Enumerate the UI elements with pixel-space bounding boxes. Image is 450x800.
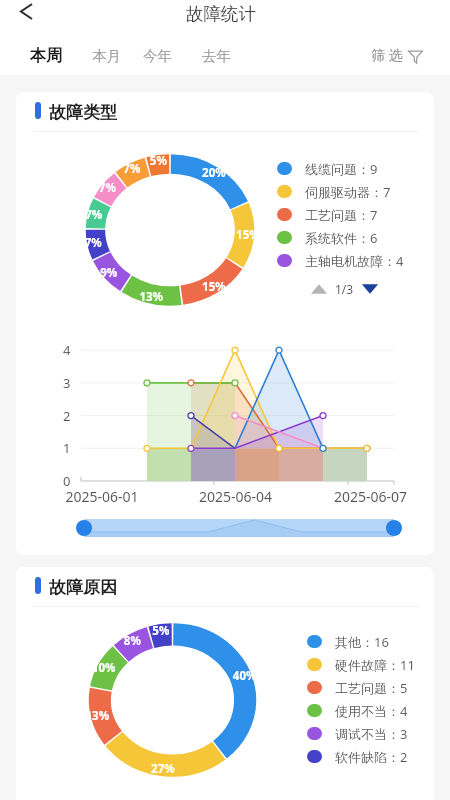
staticText: 筛选 xyxy=(370,47,404,65)
button[interactable]: 调试不当：3 xyxy=(307,722,408,745)
staticText: 故障原因 xyxy=(49,577,117,598)
staticText: 工艺问题：7 xyxy=(305,206,378,224)
staticText: 本月 xyxy=(92,47,121,65)
staticText: 软件缺陷：2 xyxy=(335,748,408,766)
staticText: 其他：16 xyxy=(335,633,389,651)
button[interactable]: 工艺问题：7 xyxy=(277,203,378,226)
button[interactable]: Next page xyxy=(361,280,379,298)
button[interactable]: 本月 xyxy=(87,44,126,68)
staticText: 今年 xyxy=(143,47,172,65)
button[interactable]: 伺服驱动器：7 xyxy=(277,180,391,203)
staticText: 调试不当：3 xyxy=(335,725,408,743)
staticText: 工艺问题：5 xyxy=(335,679,408,697)
staticText: 1/3 xyxy=(335,281,354,297)
button[interactable]: 本周 xyxy=(25,44,67,68)
button[interactable]: 主轴电机故障：4 xyxy=(277,249,404,272)
button[interactable]: 其他：16 xyxy=(307,630,389,653)
staticText: 线缆问题：9 xyxy=(305,160,378,178)
button[interactable]: 硬件故障：11 xyxy=(307,653,415,676)
button[interactable]: 使用不当：4 xyxy=(307,699,408,722)
button[interactable]: 今年 xyxy=(138,44,177,68)
staticText: 去年 xyxy=(202,47,231,65)
staticText: 伺服驱动器：7 xyxy=(305,183,391,201)
button[interactable]: 软件缺陷：2 xyxy=(307,745,408,768)
staticText: 主轴电机故障：4 xyxy=(305,252,404,270)
staticText: 本周 xyxy=(30,46,62,66)
staticText: 硬件故障：11 xyxy=(335,656,415,674)
button[interactable]: Back xyxy=(12,0,40,23)
button[interactable]: 筛选 xyxy=(366,44,427,68)
button[interactable]: 线缆问题：9 xyxy=(277,157,378,180)
staticText: 系统软件：6 xyxy=(305,229,378,247)
button[interactable]: 工艺问题：5 xyxy=(307,676,408,699)
staticText: 故障类型 xyxy=(49,102,117,123)
button[interactable]: Previous page xyxy=(310,280,328,298)
button[interactable]: 系统软件：6 xyxy=(277,226,378,249)
button[interactable]: 去年 xyxy=(197,44,236,68)
staticText: 使用不当：4 xyxy=(335,702,408,720)
staticText: 故障统计 xyxy=(186,3,256,25)
